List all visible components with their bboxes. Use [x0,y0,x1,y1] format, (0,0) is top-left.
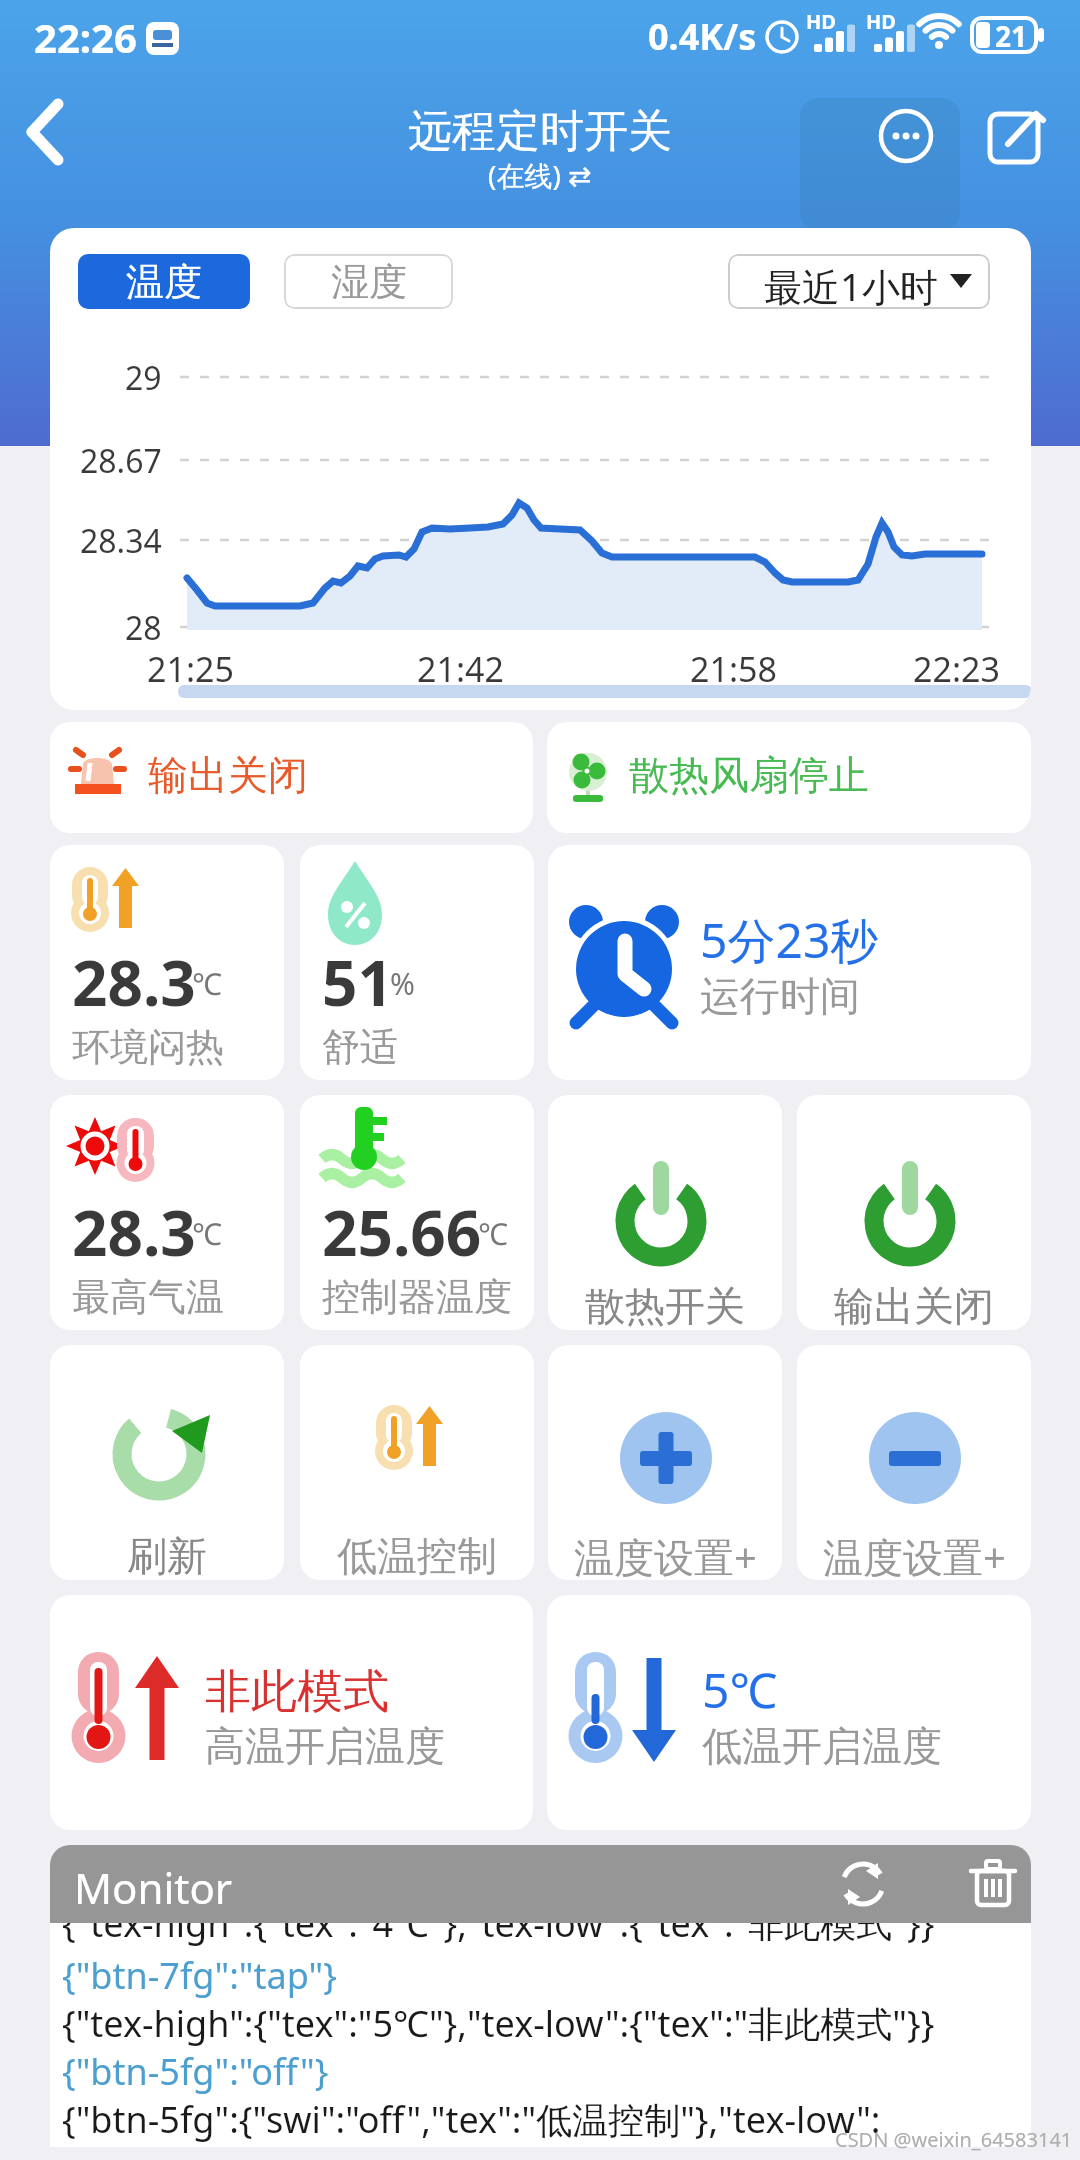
staticText: 最高气温 [72,1273,224,1321]
staticText: 29 [125,356,162,396]
staticText: 21:42 [417,646,504,692]
button[interactable]: 散热开关 [548,1095,782,1330]
staticText: 21:25 [147,646,234,692]
staticText: 5分23秒 [700,907,879,973]
button[interactable]: 输出关闭 [50,722,533,833]
staticText: 高温开启温度 [205,1721,445,1771]
staticText: 22:23 [913,646,1000,692]
button[interactable]: 温度 [78,254,250,309]
staticText: 51 [322,940,393,1024]
button[interactable]: 温度 [50,228,1031,710]
button[interactable]: 散热风扇停止 [547,722,1031,833]
button[interactable] [840,1861,886,1907]
staticText: 散热风扇停止 [629,750,869,800]
button[interactable]: 非此模式 [50,1595,533,1830]
button[interactable]: 温度设置+ [548,1345,782,1580]
staticText: 28.3 [72,1190,196,1274]
staticText: 刷新 [127,1531,207,1580]
staticText: {"btn-7fg":"tap"} [62,1951,337,2000]
staticText: {"btn-5fg":{"swi":"off","tex":"低温控制"},"t… [62,2095,881,2144]
button[interactable]: 低温控制 [300,1345,534,1580]
staticText: 低温控制 [337,1531,497,1580]
staticText: 最近1小时 [764,260,938,309]
button[interactable] [970,1859,1016,1907]
staticText: 温度 [126,258,202,306]
staticText: Monitor [74,1859,233,1916]
staticText: 控制器温度 [322,1273,512,1321]
staticText: 25.66 [322,1190,482,1274]
staticText: 21:58 [690,646,777,692]
staticText: 运行时间 [700,971,860,1021]
button[interactable]: 51 [300,845,534,1080]
staticText: ℃ [478,1213,508,1254]
staticText: HD [806,8,836,35]
staticText: 远程定时开关 [408,104,672,159]
staticText: 21 [995,17,1028,55]
staticText: 湿度 [331,258,407,306]
staticText: HD [866,8,896,35]
staticText: 28.34 [80,519,162,559]
staticText: {"tex-high":{"tex":"4℃"},"tex-low":{"tex… [62,1923,935,1948]
staticText: 低温开启温度 [702,1721,942,1771]
staticText: {"btn-5fg":"off"} [62,2047,329,2096]
staticText: 28 [125,606,162,646]
button[interactable]: 28.3 [50,845,284,1080]
button[interactable]: 温度设置+ [797,1345,1031,1580]
button[interactable]: 28.3 [50,1095,284,1330]
staticText: 舒适 [322,1023,398,1071]
button[interactable] [988,108,1048,164]
staticText: 28.67 [80,439,162,479]
staticText: ℃ [192,1213,222,1254]
staticText: 0.4K/s [648,12,757,61]
staticText: % [390,963,415,1004]
staticText: 22:26 [34,10,137,64]
staticText: 非此模式 [205,1663,389,1721]
staticText: 5℃ [702,1657,778,1722]
staticText: ℃ [192,963,222,1004]
staticText: {"tex-high":{"tex":"5℃"},"tex-low":{"tex… [62,1999,935,2048]
button[interactable] [878,108,934,164]
button[interactable]: 刷新 [50,1345,284,1580]
staticText: CSDN @weixin_64583141 [835,2126,1073,2153]
staticText: 输出关闭 [148,750,308,800]
button[interactable] [28,100,68,164]
staticText: 温度设置+ [574,1529,757,1580]
staticText: 输出关闭 [834,1281,994,1330]
button[interactable]: 25.66 [300,1095,534,1330]
button[interactable]: 5分23秒 [548,845,1031,1080]
staticText: 散热开关 [585,1281,745,1330]
button[interactable]: 湿度 [284,254,453,309]
staticText: (在线) ⇄ [488,156,592,194]
button[interactable]: 5℃ [547,1595,1031,1830]
button[interactable]: 最近1小时 [728,254,990,309]
staticText: 环境闷热 [72,1023,224,1071]
staticText: 温度设置+ [823,1529,1006,1580]
button[interactable]: 输出关闭 [797,1095,1031,1330]
staticText: 28.3 [72,940,196,1024]
